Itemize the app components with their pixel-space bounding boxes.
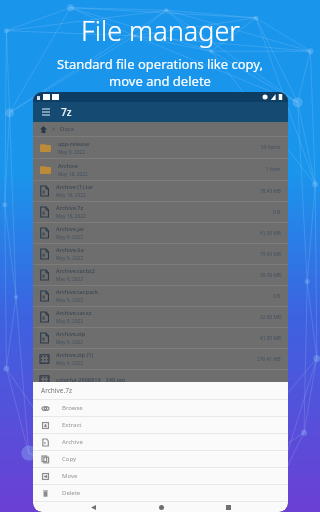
staticText: 79.43 MB [260,251,281,258]
button[interactable]: Archive.tar.xz [33,307,288,327]
staticText: 39.30 MB [260,272,281,279]
staticText: 276.41 MB [257,356,281,363]
staticText: app-release [58,140,90,148]
staticText: May 9, 2022 [56,276,83,283]
button[interactable]: colorful-2668819__340.jpg [33,370,288,390]
staticText: Archive (1).tar [56,183,94,191]
staticText: May 9, 2022 [58,149,85,156]
staticText: Archive [58,162,78,170]
staticText: May 9, 2022 [56,255,83,262]
staticText: May 18, 2022 [58,171,88,178]
button[interactable]: Archive.7z [33,202,288,222]
staticText: > [52,125,56,133]
button[interactable]: Home [153,502,169,512]
staticText: Copy [62,455,77,463]
button[interactable]: Delete [33,485,288,501]
staticText: May 9, 2022 [56,297,83,304]
staticText: May 18, 2022 [56,192,86,199]
button[interactable]: Archive.zip (1) [33,349,288,369]
button[interactable]: app-release [33,137,288,158]
staticText: Archive.zip (1) [56,351,94,359]
staticText: Archive.7z [56,204,84,212]
staticText: May 9, 2022 [56,339,83,346]
staticText: Archive [62,438,83,446]
button[interactable]: Browse [33,400,288,416]
staticText: 41.85 MB [260,335,281,342]
staticText: Archive.zip [56,330,86,338]
staticText: Docs [60,125,74,133]
staticText: Move [62,472,78,480]
button[interactable]: Recents [220,502,236,512]
button[interactable]: Menu [40,106,52,118]
staticText: Browse [62,404,83,412]
staticText: 78.43 MB [260,188,281,195]
staticText: May 9, 2022 [56,360,83,367]
button[interactable]: Archive [33,159,288,180]
staticText: Extract [62,421,82,429]
button[interactable]: Back [85,502,101,512]
staticText: Standard file operations like copy, move… [57,55,263,90]
staticText: 1 item [266,166,281,173]
staticText: Delete [62,489,81,497]
staticText: 0 B [273,293,281,300]
staticText: May 9, 2022 [56,318,83,325]
staticText: Archive.tar.bz2 [56,267,95,275]
button[interactable]: Archive.tar.bz2 [33,265,288,285]
button[interactable]: Archive.tar.pack [33,286,288,306]
staticText: 7z [61,105,72,119]
staticText: 32.60 MB [260,314,281,321]
button[interactable]: Archive (1).tar [33,181,288,201]
button[interactable]: Archive.zip [33,328,288,348]
button[interactable]: Archive.lia [33,244,288,264]
staticText: May 9, 2022 [56,234,83,241]
staticText: May 18, 2022 [56,213,86,220]
button[interactable]: Archive.jar [33,223,288,243]
staticText: Archive.7z [41,386,73,395]
staticText: 0 B [273,209,281,216]
staticText: Archive.jar [56,225,85,233]
button[interactable]: Move [33,468,288,484]
button[interactable]: Extract [33,417,288,433]
staticText: colorful-2668819__340.jpg [56,376,126,384]
button[interactable]: Archive [33,434,288,450]
staticText: Archive.tar.pack [56,288,99,296]
staticText: Archive.lia [56,246,84,254]
staticText: 50 items [261,144,281,151]
staticText: Archive.tar.xz [56,309,92,317]
staticText: File manager [81,12,240,49]
staticText: 41.30 MB [260,230,281,237]
button[interactable]: Copy [33,451,288,467]
